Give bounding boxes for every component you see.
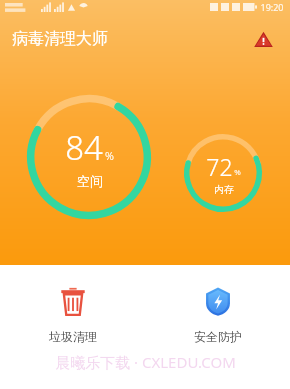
staticText: 安全防护 xyxy=(194,329,242,344)
staticText: 空间 xyxy=(77,173,103,189)
staticText: 72 xyxy=(206,151,233,182)
button[interactable]: 84 xyxy=(25,93,153,221)
other: 垃圾清理 xyxy=(56,284,90,318)
button[interactable]: 安全防护 xyxy=(145,278,290,350)
staticText: 内存 xyxy=(214,183,234,196)
staticText: 84 xyxy=(65,125,103,170)
button[interactable]: 垃圾清理 xyxy=(0,278,145,350)
staticText: 晨曦乐下载 · CXLEDU.COM xyxy=(55,352,236,372)
staticText: 19:20 xyxy=(260,1,284,13)
staticText: % xyxy=(234,166,241,177)
button[interactable]: 72 xyxy=(182,132,264,214)
other: 安全防护 xyxy=(201,284,235,318)
staticText: 病毒清理大师 xyxy=(12,29,108,49)
staticText: % xyxy=(105,148,114,163)
button[interactable]: Warning xyxy=(248,24,278,54)
staticText: 垃圾清理 xyxy=(49,329,97,344)
